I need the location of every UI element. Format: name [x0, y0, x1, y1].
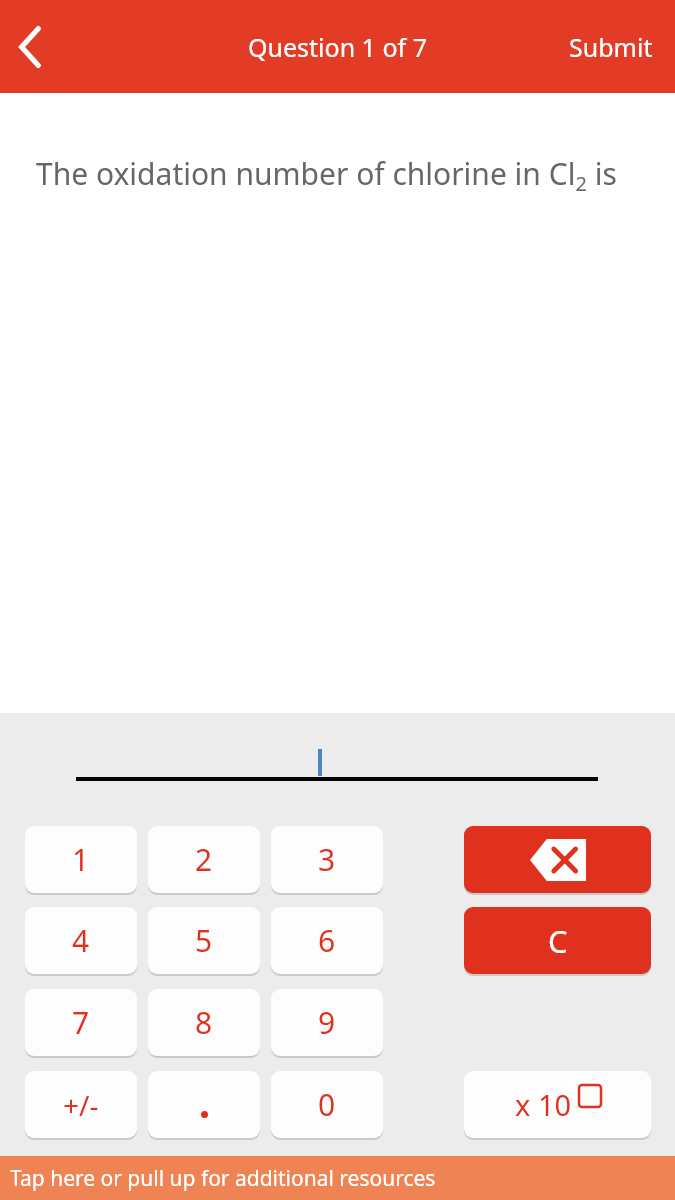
staticText: 9 [318, 1002, 336, 1043]
button[interactable]: 6 [271, 907, 383, 974]
button[interactable] [148, 1071, 260, 1138]
staticText: The oxidation number of chlorine in Cl2 … [36, 153, 617, 197]
staticText: Question 1 of 7 [248, 30, 427, 64]
staticText: 3 [318, 839, 336, 880]
staticText: 4 [72, 920, 90, 961]
staticText: 8 [195, 1002, 213, 1043]
staticText: Submit [569, 30, 653, 64]
button[interactable]: 0 [271, 1071, 383, 1138]
button[interactable]: x 10 [464, 1071, 651, 1138]
button[interactable]: 7 [25, 989, 137, 1056]
button[interactable]: 8 [148, 989, 260, 1056]
button[interactable]: 9 [271, 989, 383, 1056]
staticText: 1 [72, 839, 90, 880]
button[interactable]: Tap here or pull up for additional resou… [0, 1156, 675, 1200]
staticText: 5 [195, 920, 213, 961]
button[interactable]: 5 [148, 907, 260, 974]
button[interactable]: 2 [148, 826, 260, 893]
button[interactable]: Submit [547, 0, 675, 93]
button[interactable]: 4 [25, 907, 137, 974]
staticText: C [548, 920, 568, 962]
button[interactable]: Back [0, 0, 72, 93]
staticText: 2 [195, 839, 213, 880]
staticText: 7 [72, 1002, 90, 1043]
button[interactable]: Clear [464, 907, 651, 974]
staticText: +/- [63, 1086, 99, 1124]
staticText: 0 [318, 1084, 336, 1125]
staticText: 6 [318, 920, 336, 961]
button[interactable]: Backspace [464, 826, 651, 893]
button[interactable]: 1 [25, 826, 137, 893]
staticText: Tap here or pull up for additional resou… [10, 1164, 436, 1193]
button[interactable]: +/- [25, 1071, 137, 1138]
button[interactable]: 3 [271, 826, 383, 893]
staticText: x 10 [515, 1085, 572, 1124]
